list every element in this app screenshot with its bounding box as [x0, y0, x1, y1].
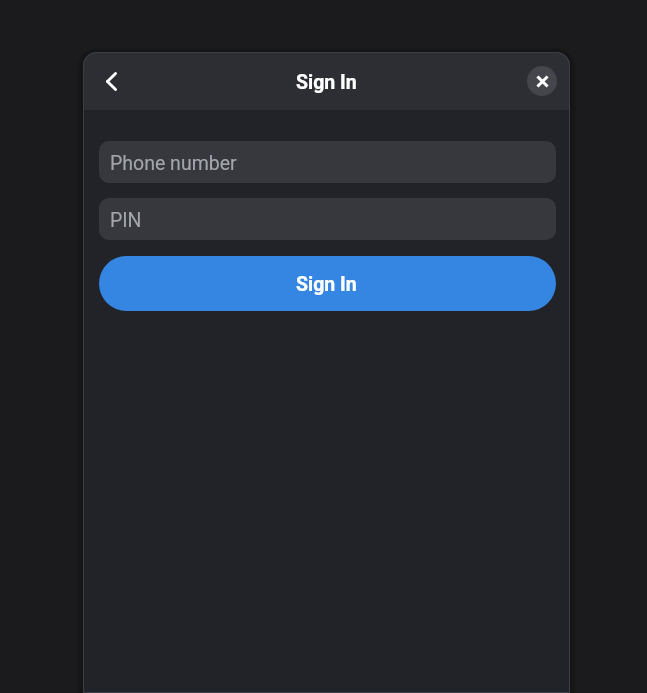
staticText: Sign In: [296, 71, 357, 94]
button[interactable]: Back: [89, 59, 133, 103]
button[interactable]: Phone number: [99, 141, 556, 183]
button[interactable]: Sign In: [99, 256, 556, 311]
staticText: PIN: [110, 209, 142, 232]
staticText: Sign In: [296, 273, 357, 296]
button[interactable]: PIN: [99, 198, 556, 240]
button[interactable]: Close: [527, 66, 557, 96]
staticText: Phone number: [110, 152, 237, 175]
